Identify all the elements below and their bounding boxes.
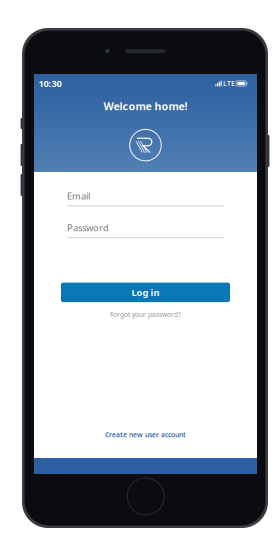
button[interactable]: Log in [61,283,230,302]
staticText: Welcome home! [103,99,187,113]
staticText: Forgot your password? [110,310,181,319]
staticText: Password [67,221,109,234]
staticText: 10:30 [38,77,61,90]
staticText: Create new user account [105,430,186,439]
staticText: LTE [223,79,235,88]
staticText: Log in [131,286,159,299]
button[interactable]: Create new user account [97,427,194,442]
button[interactable]: Forgot your password? [104,308,187,321]
staticText: Email [67,190,90,202]
